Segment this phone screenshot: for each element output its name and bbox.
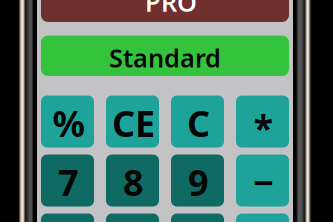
button[interactable]: 8 bbox=[106, 154, 159, 206]
button[interactable]: * bbox=[236, 95, 289, 147]
staticText: PRO bbox=[145, 0, 197, 19]
staticText: 7 bbox=[58, 158, 79, 206]
button[interactable]: + bbox=[236, 213, 289, 222]
button[interactable]: 6 bbox=[171, 213, 224, 222]
staticText: 8 bbox=[123, 158, 144, 206]
button[interactable]: 4 bbox=[41, 213, 94, 222]
staticText: Standard bbox=[109, 41, 221, 74]
button[interactable]: 5 bbox=[106, 213, 159, 222]
staticText: * bbox=[253, 103, 273, 151]
button[interactable]: % bbox=[41, 95, 94, 147]
button[interactable]: CE bbox=[106, 95, 159, 147]
staticText: % bbox=[52, 99, 84, 147]
button[interactable]: Standard bbox=[41, 35, 289, 76]
staticText: 9 bbox=[188, 158, 209, 206]
button[interactable]: 7 bbox=[41, 154, 94, 206]
staticText: − bbox=[253, 158, 274, 206]
button[interactable]: − bbox=[236, 154, 289, 206]
staticText: C bbox=[187, 99, 210, 147]
staticText: CE bbox=[112, 99, 155, 147]
button[interactable]: 9 bbox=[171, 154, 224, 206]
button[interactable]: C bbox=[171, 95, 224, 147]
button[interactable] bbox=[41, 0, 289, 22]
